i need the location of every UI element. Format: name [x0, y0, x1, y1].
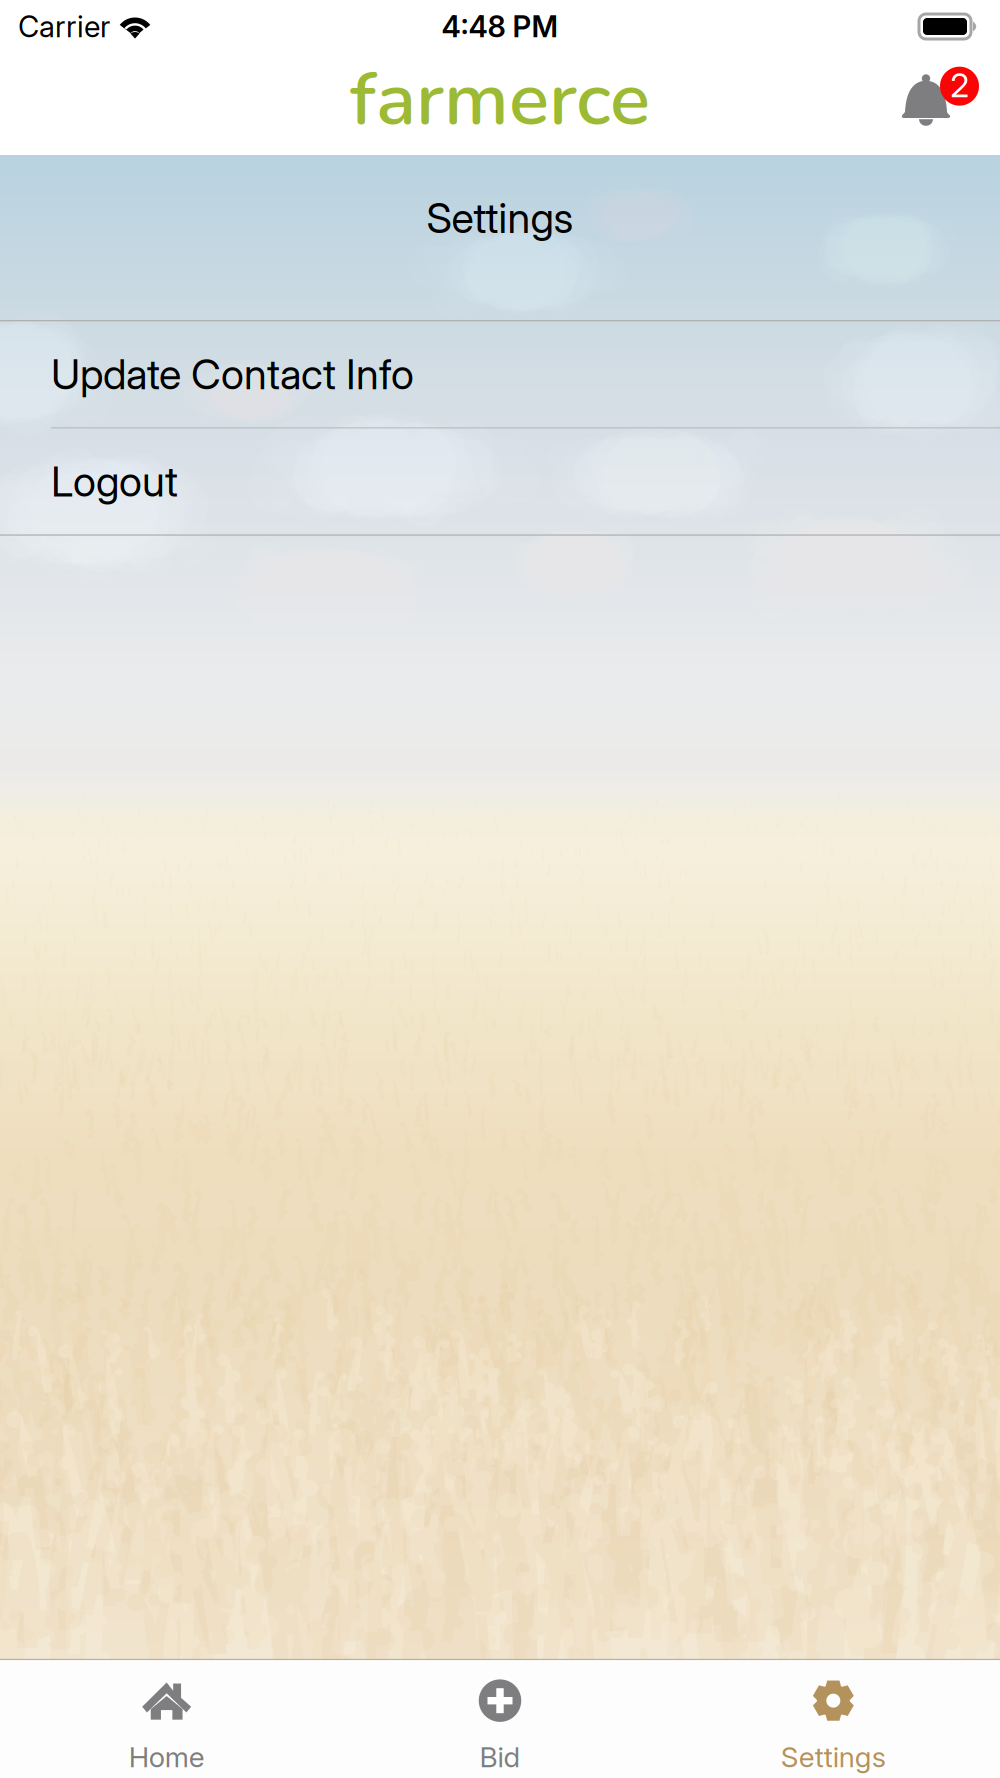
staticText: Bid: [479, 1740, 520, 1774]
staticText: Carrier: [18, 9, 110, 44]
staticText: Home: [129, 1740, 205, 1774]
staticText: Logout: [51, 456, 178, 506]
staticText: farmerce: [350, 49, 650, 150]
staticText: Update Contact Info: [51, 349, 414, 399]
button[interactable]: Settings: [667, 1660, 1000, 1778]
staticText: 2: [950, 65, 969, 105]
button[interactable]: Bid: [333, 1660, 667, 1778]
staticText: Settings: [781, 1740, 886, 1774]
staticText: Settings: [426, 193, 573, 243]
button[interactable]: Logout: [0, 428, 1000, 534]
button[interactable]: Update Contact Info: [0, 321, 1000, 427]
button[interactable]: Home: [0, 1660, 333, 1778]
staticText: 4:48 PM: [441, 9, 558, 44]
button[interactable]: Notifications: [896, 58, 992, 150]
